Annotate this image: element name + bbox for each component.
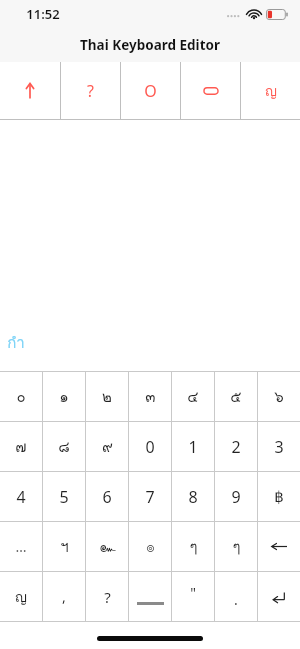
button[interactable]: ๒: [86, 372, 128, 421]
button[interactable]: ๑: [43, 372, 85, 421]
staticText: ๏: [146, 536, 155, 558]
staticText: ": [190, 583, 196, 602]
button[interactable]: 7: [129, 472, 171, 521]
button[interactable]: ๘: [43, 422, 85, 471]
staticText: ๐: [16, 385, 26, 409]
button[interactable]: 6: [86, 472, 128, 521]
staticText: 9: [231, 486, 241, 508]
button[interactable]: Fongman: [129, 522, 171, 571]
staticText: 3: [274, 436, 284, 458]
staticText: …: [15, 537, 27, 556]
button[interactable]: 0: [129, 422, 171, 471]
button[interactable]: Khomut: [86, 522, 128, 571]
staticText: 4: [16, 486, 26, 508]
button[interactable]: Question mark: [86, 572, 128, 621]
button[interactable]: ๙: [86, 422, 128, 471]
button[interactable]: Comma: [43, 572, 85, 621]
staticText: ๖: [274, 385, 284, 409]
staticText: ญ: [15, 586, 27, 608]
staticText: ๕: [230, 385, 242, 409]
staticText: ๑: [59, 385, 69, 409]
staticText: 7: [145, 486, 155, 508]
button[interactable]: ๐: [0, 372, 42, 421]
staticText: ๆ: [189, 535, 198, 559]
button[interactable]: Maiyamok: [215, 522, 257, 571]
button[interactable]: ๖: [258, 372, 300, 421]
staticText: 0: [145, 436, 155, 458]
staticText: Thai Keyboard Editor: [80, 36, 220, 54]
button[interactable]: Return: [258, 572, 300, 621]
button[interactable]: ๗: [0, 422, 42, 471]
button[interactable]: ๔: [172, 372, 214, 421]
staticText: ?: [87, 80, 94, 102]
staticText: ฿: [274, 488, 284, 505]
staticText: 2: [231, 436, 241, 458]
button[interactable]: Key outline: [181, 62, 240, 119]
staticText: ๆ: [232, 535, 241, 559]
staticText: .: [234, 590, 238, 609]
button[interactable]: Thai letter: [0, 572, 42, 621]
button[interactable]: ฿: [258, 472, 300, 521]
button[interactable]: ๓: [129, 372, 171, 421]
button[interactable]: 4: [0, 472, 42, 521]
staticText: 5: [59, 486, 69, 508]
button[interactable]: Thai character: [241, 62, 300, 119]
staticText: 6: [102, 486, 112, 508]
button[interactable]: Circle: [121, 62, 180, 119]
staticText: 11:52: [26, 5, 60, 23]
staticText: ๘: [58, 435, 70, 459]
button[interactable]: Quote: [172, 572, 214, 621]
button[interactable]: Backspace: [258, 522, 300, 571]
staticText: ,: [62, 587, 66, 606]
button[interactable]: 2: [215, 422, 257, 471]
button[interactable]: Angkhankhu: [172, 522, 214, 571]
button[interactable]: Paiyannoi: [43, 522, 85, 571]
staticText: ๔: [187, 385, 199, 409]
button[interactable]: Space: [129, 572, 171, 621]
button[interactable]: 3: [258, 422, 300, 471]
button[interactable]: 1: [172, 422, 214, 471]
staticText: ?: [104, 587, 111, 607]
staticText: ๛: [99, 536, 116, 558]
button[interactable]: 8: [172, 472, 214, 521]
button[interactable]: Period: [215, 572, 257, 621]
button[interactable]: Shift: [0, 62, 60, 119]
staticText: ญ: [265, 80, 277, 102]
staticText: ๓: [145, 385, 156, 409]
staticText: 8: [188, 486, 198, 508]
staticText: ฯ: [60, 535, 69, 559]
staticText: ๒: [102, 385, 112, 409]
button[interactable]: ๕: [215, 372, 257, 421]
button[interactable]: Ellipsis: [0, 522, 42, 571]
staticText: กำ: [7, 331, 25, 355]
button[interactable]: 9: [215, 472, 257, 521]
staticText: ๗: [15, 435, 27, 459]
staticText: 1: [188, 436, 198, 458]
staticText: ๙: [102, 435, 113, 459]
button[interactable]: Question: [61, 62, 120, 119]
staticText: O: [144, 80, 157, 102]
button[interactable]: 5: [43, 472, 85, 521]
